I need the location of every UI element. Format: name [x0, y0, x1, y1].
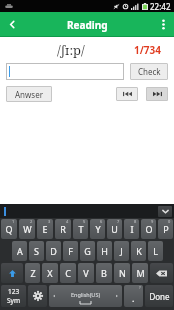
staticText: F: [68, 245, 73, 257]
button[interactable]: English(US): [49, 285, 122, 307]
other: Backspace: [150, 263, 173, 283]
button[interactable]: J: [114, 241, 129, 261]
button[interactable]: E: [37, 219, 53, 239]
button[interactable]: I: [124, 219, 139, 239]
staticText: C: [65, 267, 71, 279]
staticText: 8: [134, 219, 137, 224]
staticText: 6: [100, 219, 103, 224]
staticText: A: [17, 245, 23, 257]
staticText: S: [34, 245, 39, 257]
button[interactable]: Previous: [116, 87, 138, 101]
button[interactable]: S: [29, 241, 44, 261]
button[interactable]: L: [148, 241, 163, 261]
button[interactable]: M: [132, 263, 148, 283]
button[interactable]: G: [80, 241, 95, 261]
staticText: 0: [168, 219, 171, 224]
button[interactable]: Done: [145, 285, 173, 307]
staticText: J: [120, 245, 123, 257]
staticText: 123: [8, 287, 20, 296]
staticText: Y: [95, 223, 101, 235]
staticText: /ʃɪ:p/: [57, 41, 85, 59]
button[interactable]: O: [141, 219, 156, 239]
button[interactable]: Settings: [28, 285, 47, 307]
button[interactable]: Expand suggestions: [158, 206, 172, 217]
staticText: .: [132, 292, 135, 304]
button[interactable]: X: [42, 263, 58, 283]
staticText: X: [47, 267, 53, 279]
staticText: Z: [30, 267, 36, 279]
button[interactable]: A: [12, 241, 27, 261]
staticText: T: [78, 223, 84, 235]
staticText: 3: [48, 219, 51, 224]
staticText: R: [60, 223, 66, 235]
other: Settings: [28, 285, 47, 307]
button[interactable]: U: [107, 219, 122, 239]
staticText: Anwser: [15, 89, 43, 100]
staticText: I: [130, 223, 134, 235]
staticText: 1: [12, 219, 15, 224]
staticText: Done: [149, 291, 170, 302]
staticText: V: [83, 267, 89, 279]
staticText: D: [50, 245, 57, 257]
button[interactable]: Z: [25, 263, 40, 283]
button[interactable]: Q: [1, 219, 17, 239]
button[interactable]: .: [124, 285, 143, 307]
button[interactable]: C: [60, 263, 76, 283]
staticText: 2: [30, 219, 33, 224]
staticText: 9: [151, 219, 154, 224]
button[interactable]: R: [55, 219, 71, 239]
button[interactable]: 123: [1, 285, 26, 307]
staticText: E: [42, 223, 48, 235]
button[interactable]: Next: [146, 87, 168, 101]
staticText: 7: [117, 219, 120, 224]
button[interactable]: D: [46, 241, 61, 261]
staticText: U: [111, 223, 118, 235]
staticText: H: [101, 245, 108, 257]
button[interactable]: P: [158, 219, 173, 239]
staticText: G: [84, 245, 91, 257]
button[interactable]: K: [131, 241, 146, 261]
staticText: 5: [83, 219, 86, 224]
button[interactable]: B: [96, 263, 112, 283]
button[interactable]: W: [19, 219, 35, 239]
button[interactable]: Back: [0, 12, 25, 37]
staticText: K: [136, 245, 142, 257]
staticText: O: [145, 223, 153, 235]
staticText: English(US): [71, 291, 101, 298]
staticText: 4: [66, 219, 69, 224]
button[interactable]: Backspace: [150, 263, 173, 283]
staticText: Reading: [67, 18, 108, 32]
button[interactable]: Check: [130, 63, 168, 80]
staticText: N: [119, 267, 126, 279]
button[interactable]: V: [78, 263, 94, 283]
button[interactable]: N: [114, 263, 130, 283]
staticText: Check: [138, 66, 161, 77]
staticText: W: [23, 223, 32, 235]
button[interactable]: Y: [90, 219, 105, 239]
button[interactable]: T: [73, 219, 88, 239]
staticText: ?: [139, 285, 141, 290]
button[interactable]: Anwser: [6, 86, 52, 102]
staticText: L: [153, 245, 158, 257]
button[interactable]: More options: [152, 12, 174, 37]
button[interactable]: [6, 63, 124, 80]
staticText: Q: [5, 223, 13, 235]
button[interactable]: H: [97, 241, 112, 261]
staticText: B: [101, 267, 107, 279]
button[interactable]: F: [63, 241, 78, 261]
staticText: Sym: [7, 296, 20, 305]
staticText: 1/734: [134, 43, 162, 57]
staticText: 22:42: [150, 1, 171, 12]
staticText: M: [136, 267, 145, 279]
staticText: P: [163, 223, 169, 235]
button[interactable]: [1, 263, 23, 283]
